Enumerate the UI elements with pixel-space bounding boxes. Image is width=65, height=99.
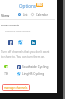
button[interactable]: manage channels — [2, 84, 30, 91]
staticText: View — [1, 13, 10, 18]
button[interactable]: Pro badge — [36, 3, 43, 7]
staticText: Calendar — [36, 13, 48, 17]
staticText: manage channels — [4, 86, 28, 90]
staticText: f — [18, 65, 20, 69]
button[interactable]: Channel disabled — [4, 72, 8, 75]
button[interactable]: Facebook — [8, 40, 13, 45]
button[interactable]: Facebook — [17, 65, 21, 69]
staticText: in — [32, 41, 35, 45]
staticText: f — [10, 40, 12, 45]
staticText: LingHS Cycling — [22, 72, 45, 76]
staticText: Turn off channels that you don't want to… — [1, 50, 51, 59]
button[interactable]: LinkedIn — [31, 40, 36, 45]
button[interactable]: Calendar view — [31, 13, 34, 16]
staticText: Southside Cycling — [22, 65, 49, 69]
staticText: Connect a social account — [5, 30, 31, 33]
staticText: Options — [19, 3, 37, 9]
button[interactable]: Twitter — [18, 40, 23, 45]
button[interactable]: Twitter — [17, 72, 21, 76]
button[interactable]: Channel enabled — [4, 65, 8, 68]
button[interactable]: List view — [18, 13, 21, 16]
staticText: Social Accounts — [1, 23, 20, 26]
staticText: PRO — [37, 3, 43, 7]
staticText: List — [23, 13, 28, 17]
